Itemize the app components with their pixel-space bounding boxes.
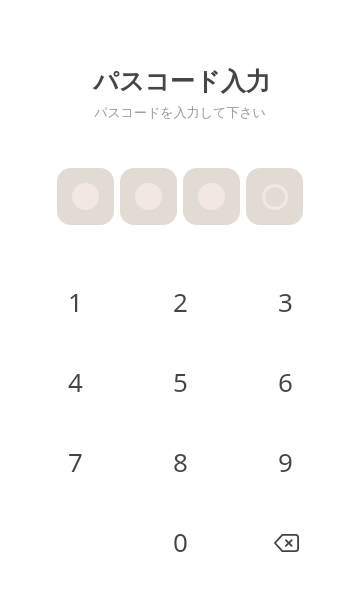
button[interactable]: 8 xyxy=(128,421,233,501)
staticText: 6 xyxy=(278,364,293,399)
button[interactable]: 3 xyxy=(233,261,338,341)
staticText: 2 xyxy=(173,284,188,319)
button[interactable]: 5 xyxy=(128,341,233,421)
button[interactable]: 6 xyxy=(233,341,338,421)
button[interactable]: 2 xyxy=(128,261,233,341)
staticText: 4 xyxy=(68,364,83,399)
staticText: 3 xyxy=(278,284,293,319)
staticText: 0 xyxy=(173,524,188,559)
button[interactable]: 9 xyxy=(233,421,338,501)
staticText: 5 xyxy=(173,364,188,399)
staticText: パスコードを入力して下さい xyxy=(0,104,360,120)
button[interactable]: 1 xyxy=(22,261,128,341)
staticText: 7 xyxy=(68,444,83,479)
staticText: パスコード入力 xyxy=(4,66,360,97)
other: Delete xyxy=(274,534,299,552)
staticText: 1 xyxy=(68,284,83,319)
button[interactable]: 0 xyxy=(128,501,233,581)
button[interactable]: Delete xyxy=(233,501,338,581)
staticText: 8 xyxy=(173,444,188,479)
button[interactable]: 7 xyxy=(22,421,128,501)
button[interactable]: 4 xyxy=(22,341,128,421)
staticText: 9 xyxy=(278,444,293,479)
